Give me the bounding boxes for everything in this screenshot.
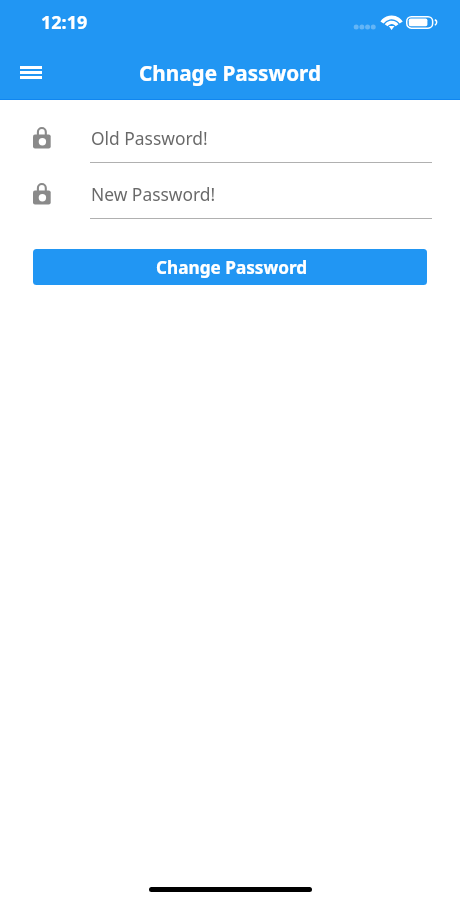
button[interactable]: New Password! <box>24 177 436 223</box>
staticText: New Password! <box>91 182 216 206</box>
staticText: Change Password <box>156 256 308 279</box>
button[interactable]: Open navigation menu <box>10 55 52 89</box>
button[interactable]: Old Password! <box>24 121 436 167</box>
staticText: 12:19 <box>41 10 88 35</box>
button[interactable]: Change Password <box>33 249 427 285</box>
staticText: Chnage Password <box>0 59 460 87</box>
staticText: Old Password! <box>91 126 208 150</box>
